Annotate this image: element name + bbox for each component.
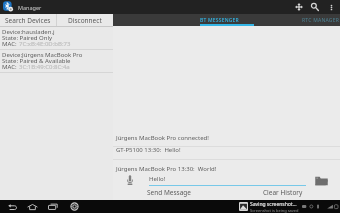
button[interactable]: Saving screenshot...	[239, 200, 340, 213]
button[interactable]: Search Devices	[0, 14, 56, 26]
staticText: Saving screenshot...	[250, 201, 297, 208]
button[interactable]: GT-P5100 13:30: Hello!	[116, 146, 181, 154]
button[interactable]: Device:hausladen.j	[0, 27, 113, 49]
button[interactable]: Search	[308, 0, 322, 14]
staticText: 3C:1B:49:C0:8C:4a	[19, 63, 70, 71]
staticText: Search Devices	[5, 16, 51, 25]
staticText: Disconnect	[68, 16, 102, 25]
button[interactable]: More options	[325, 1, 338, 14]
button[interactable]: Open files	[312, 172, 330, 190]
button[interactable]: Disconnect	[57, 14, 113, 26]
staticText: State: Paired & Available	[2, 57, 71, 65]
button[interactable]: Back	[4, 200, 20, 213]
button[interactable]: Jürgens MacBook Pro 13:30: World!	[116, 165, 217, 173]
staticText: Device:hausladen.j	[2, 28, 55, 36]
button[interactable]: Recent apps	[45, 200, 61, 213]
staticText: Hello!	[149, 175, 166, 183]
button[interactable]: Device:Jürgens MacBook Pro	[0, 50, 113, 72]
button[interactable]: Send Message	[113, 187, 226, 198]
staticText: State: Paired Only	[2, 34, 53, 42]
staticText: Screenshot is being saved	[250, 208, 299, 213]
button[interactable]: Clear History	[226, 187, 340, 198]
staticText: Manager	[18, 4, 42, 11]
button[interactable]: Screenshot	[66, 200, 82, 213]
staticText: 7C:xB:4E:0D:bB:73	[19, 40, 71, 48]
button[interactable]: RTC MANAGER	[302, 17, 340, 24]
staticText: Device:Jürgens MacBook Pro	[2, 51, 83, 59]
button[interactable]: Home	[24, 200, 40, 213]
staticText: Send Message	[147, 188, 192, 197]
staticText: MAC:	[2, 40, 19, 48]
button[interactable]: Jürgens MacBook Pro connected!	[116, 134, 209, 142]
button[interactable]: Voice input	[122, 172, 138, 188]
staticText: MAC:	[2, 63, 19, 71]
button[interactable]: BT MESSENGER	[200, 17, 239, 24]
staticText: Clear History	[263, 188, 303, 197]
button[interactable]: Connect device	[292, 0, 306, 14]
